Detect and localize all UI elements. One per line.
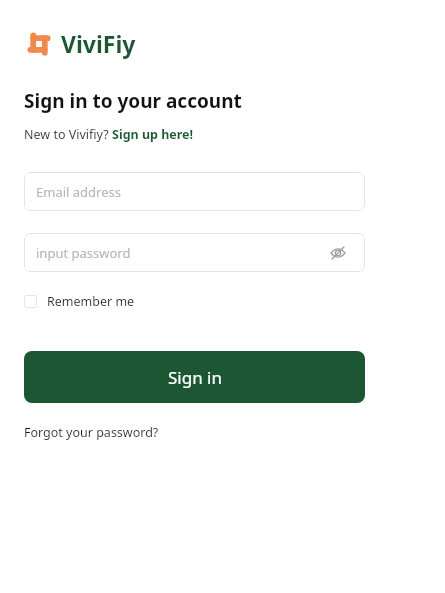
button[interactable]: Forgot your password? — [24, 424, 159, 441]
staticText: Sign up here! — [112, 126, 194, 143]
staticText: input password — [36, 244, 131, 262]
staticText: Email address — [36, 183, 121, 201]
button[interactable]: Email address — [24, 172, 365, 211]
staticText: Remember me — [47, 293, 135, 310]
button[interactable]: Sign up here! — [112, 126, 194, 143]
staticText: New to Vivifiy? — [24, 126, 112, 143]
button[interactable]: Sign in — [24, 351, 365, 403]
staticText: Forgot your password? — [24, 424, 159, 441]
staticText: Sign in to your account — [24, 88, 242, 114]
button[interactable]: Remember me — [24, 293, 135, 310]
button[interactable]: ViviFiy home — [24, 28, 136, 59]
button[interactable]: input password — [24, 233, 365, 272]
button[interactable]: Show password — [325, 240, 351, 266]
staticText: Sign in — [168, 366, 222, 389]
staticText: ViviFiy — [61, 28, 136, 59]
